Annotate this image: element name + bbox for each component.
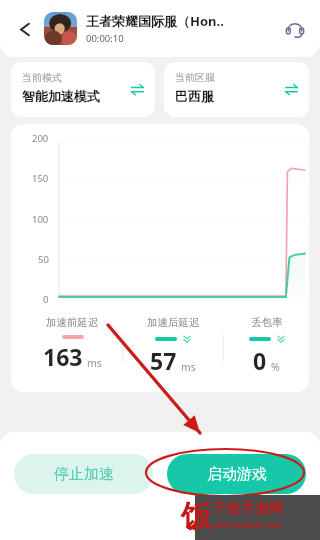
staticText: 饭	[181, 497, 212, 536]
staticText: ms	[87, 356, 102, 370]
staticText: www.eduext.com	[213, 519, 283, 530]
staticText: 启动游戏	[207, 465, 267, 484]
staticText: 加速前延迟	[46, 316, 99, 329]
button[interactable]: Customer support	[280, 14, 310, 44]
staticText: ms	[181, 360, 196, 374]
staticText: 加速后延迟	[147, 316, 200, 329]
staticText: 150	[32, 172, 49, 185]
staticText: 100	[32, 213, 49, 226]
staticText: 停止加速	[54, 465, 114, 484]
staticText: 当前模式	[22, 71, 62, 84]
button[interactable]: 当前模式	[11, 62, 155, 117]
staticText: 干饭手游网	[213, 500, 283, 518]
staticText: 当前区服	[175, 71, 215, 84]
staticText: 163	[43, 341, 83, 372]
staticText: 200	[32, 132, 49, 145]
button[interactable]: 启动游戏	[167, 454, 306, 494]
staticText: 0	[43, 293, 49, 306]
staticText: 巴西服	[175, 88, 214, 104]
button[interactable]: 当前区服	[164, 62, 309, 117]
button[interactable]: Back	[8, 12, 42, 46]
staticText: %	[271, 360, 280, 374]
staticText: 0	[253, 345, 267, 376]
button[interactable]: 停止加速	[14, 454, 153, 494]
staticText: 50	[38, 253, 49, 266]
staticText: 王者荣耀国际服（Hon..	[86, 12, 224, 30]
staticText: 智能加速模式	[22, 88, 100, 104]
staticText: 丢包率	[251, 316, 283, 329]
staticText: 00:00:10	[86, 32, 124, 45]
staticText: 57	[150, 345, 177, 376]
